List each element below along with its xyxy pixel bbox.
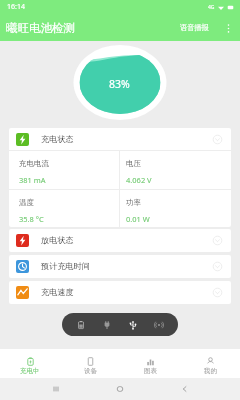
- staticText: 充电电流: [19, 159, 49, 168]
- staticText: 充电速度: [41, 287, 74, 297]
- button[interactable]: 图表: [120, 352, 180, 375]
- button[interactable]: 充电状态: [9, 128, 231, 227]
- button[interactable]: 充电中: [0, 352, 60, 375]
- staticText: 电压: [126, 159, 141, 168]
- button[interactable]: 放电状态: [9, 229, 231, 252]
- button[interactable]: Recents: [47, 380, 65, 398]
- staticText: 4G: [208, 4, 215, 11]
- staticText: 曦旺电池检测: [6, 21, 75, 35]
- staticText: 充电状态: [41, 134, 74, 144]
- staticText: 放电状态: [41, 235, 74, 245]
- staticText: 我的: [204, 367, 217, 375]
- button[interactable]: Battery: [74, 318, 88, 332]
- staticText: 35.8 °C: [19, 214, 44, 224]
- button[interactable]: 设备: [60, 352, 120, 375]
- button[interactable]: More options: [221, 21, 235, 35]
- button[interactable]: Collapse: [211, 260, 223, 272]
- button[interactable]: 我的: [180, 352, 240, 375]
- staticText: 充电中: [20, 367, 40, 375]
- staticText: 83%: [109, 77, 130, 91]
- staticText: 图表: [144, 367, 157, 375]
- button[interactable]: AC plug: [100, 318, 114, 332]
- button[interactable]: Home: [111, 380, 129, 398]
- button[interactable]: Collapse: [211, 133, 223, 145]
- button[interactable]: 充电速度: [9, 281, 231, 304]
- button[interactable]: Wireless: [152, 318, 166, 332]
- button[interactable]: 语音播报: [178, 20, 211, 35]
- staticText: 381 mA: [19, 175, 46, 185]
- staticText: 预计充电时间: [41, 261, 91, 271]
- staticText: 语音播报: [180, 23, 209, 32]
- staticText: 16:14: [7, 2, 25, 12]
- staticText: 设备: [84, 367, 97, 375]
- staticText: 4.062 V: [126, 175, 152, 185]
- button[interactable]: USB: [126, 318, 140, 332]
- button[interactable]: Collapse: [211, 234, 223, 246]
- staticText: 0.01 W: [126, 214, 150, 224]
- staticText: 功率: [126, 198, 141, 207]
- button[interactable]: Collapse: [211, 286, 223, 298]
- button[interactable]: Back: [176, 380, 194, 398]
- button[interactable]: 预计充电时间: [9, 255, 231, 278]
- staticText: 温度: [19, 198, 34, 207]
